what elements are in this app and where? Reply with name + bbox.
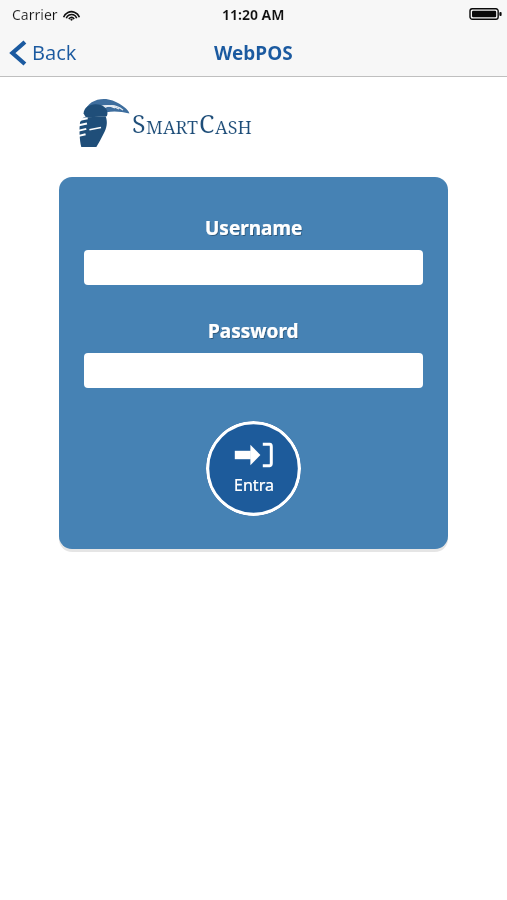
staticText: Username xyxy=(206,216,304,242)
staticText: 11:20 AM xyxy=(222,5,285,24)
staticText: S xyxy=(132,106,146,140)
button[interactable]: Entra - Login xyxy=(206,421,301,516)
staticText: Carrier xyxy=(12,5,58,24)
button[interactable]: Back xyxy=(0,33,91,72)
staticText: MART xyxy=(146,115,199,140)
button[interactable] xyxy=(84,250,423,285)
staticText: Password xyxy=(209,319,300,345)
staticText: C xyxy=(199,106,215,140)
staticText: Username xyxy=(205,215,303,241)
button[interactable] xyxy=(84,353,423,388)
staticText: ASH xyxy=(215,115,252,140)
staticText: WebPOS xyxy=(214,40,293,66)
staticText: Entra xyxy=(234,474,274,496)
staticText: Back xyxy=(32,39,77,66)
staticText: Password xyxy=(208,318,299,344)
